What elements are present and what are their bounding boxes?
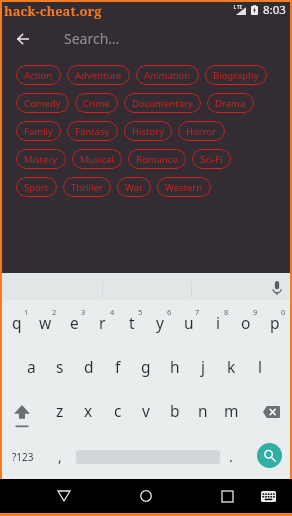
staticText: Thriller xyxy=(71,181,103,194)
button[interactable]: f xyxy=(103,345,132,388)
button[interactable]: Family xyxy=(16,121,61,141)
button[interactable]: c xyxy=(103,389,132,432)
button[interactable]: Recent apps xyxy=(207,479,247,513)
staticText: Horror xyxy=(186,125,217,138)
button[interactable]: Sci-Fi xyxy=(192,149,231,169)
button[interactable]: q xyxy=(2,301,31,344)
button[interactable]: v xyxy=(131,389,160,432)
button[interactable]: Crime xyxy=(75,93,118,113)
button[interactable]: y xyxy=(145,301,174,344)
button[interactable]: x xyxy=(74,389,103,432)
button[interactable]: Sport xyxy=(16,177,57,197)
staticText: z xyxy=(56,400,64,421)
staticText: f xyxy=(115,356,121,377)
staticText: u xyxy=(184,312,194,333)
staticText: 0 xyxy=(281,307,286,317)
staticText: War xyxy=(125,181,143,194)
button[interactable] xyxy=(76,435,220,478)
button[interactable]: Romance xyxy=(128,149,186,169)
staticText: h xyxy=(170,356,180,377)
staticText: j xyxy=(201,356,205,377)
button[interactable]: k xyxy=(217,345,246,388)
button[interactable]: Search xyxy=(251,437,287,473)
button[interactable]: p xyxy=(260,301,289,344)
button[interactable]: Fantasy xyxy=(67,121,118,141)
staticText: Drama xyxy=(215,97,246,110)
staticText: v xyxy=(142,400,150,421)
button[interactable]: i xyxy=(203,301,232,344)
staticText: b xyxy=(170,400,180,421)
staticText: n xyxy=(198,400,208,421)
button[interactable]: Back xyxy=(44,479,84,513)
staticText: Fantasy xyxy=(75,125,110,138)
staticText: 4 xyxy=(110,307,115,317)
staticText: Crime xyxy=(83,97,110,110)
staticText: History xyxy=(132,125,164,138)
button[interactable]: m xyxy=(217,389,246,432)
button[interactable]: Switch keyboard xyxy=(248,479,288,513)
button[interactable]: . xyxy=(217,435,245,478)
button[interactable]: a xyxy=(17,345,46,388)
staticText: Romance xyxy=(136,153,178,166)
button[interactable]: z xyxy=(45,389,74,432)
button[interactable]: Mistery xyxy=(16,149,66,169)
button[interactable]: Voice input xyxy=(261,275,292,301)
staticText: m xyxy=(224,400,239,421)
staticText: Adventure xyxy=(75,69,122,82)
staticText: o xyxy=(241,312,251,333)
button[interactable]: e xyxy=(60,301,89,344)
button[interactable]: t xyxy=(117,301,146,344)
button[interactable]: n xyxy=(188,389,217,432)
button[interactable]: Drama xyxy=(207,93,254,113)
button[interactable]: r xyxy=(88,301,117,344)
staticText: 1 xyxy=(24,307,29,317)
button[interactable]: Thriller xyxy=(63,177,111,197)
staticText: w xyxy=(39,312,52,333)
button[interactable]: g xyxy=(131,345,160,388)
staticText: l xyxy=(258,356,262,377)
staticText: x xyxy=(84,400,93,421)
button[interactable]: Home xyxy=(126,479,166,513)
staticText: i xyxy=(216,312,220,333)
button[interactable]: Action xyxy=(16,65,61,85)
button[interactable]: s xyxy=(45,345,74,388)
button[interactable]: Back xyxy=(4,20,41,58)
button[interactable]: Horror xyxy=(178,121,225,141)
button[interactable]: l xyxy=(245,345,274,388)
staticText: ?123 xyxy=(12,450,34,464)
staticText: Animation xyxy=(144,69,191,82)
button[interactable]: Documentary xyxy=(124,93,201,113)
button[interactable]: Adventure xyxy=(67,65,130,85)
button[interactable]: Western xyxy=(157,177,211,197)
staticText: a xyxy=(27,356,36,377)
staticText: Documentary xyxy=(132,97,193,110)
button[interactable]: War xyxy=(117,177,151,197)
button[interactable]: b xyxy=(160,389,189,432)
button[interactable]: ?123 xyxy=(3,435,43,478)
staticText: s xyxy=(56,356,64,377)
button[interactable]: u xyxy=(174,301,203,344)
staticText: 6 xyxy=(167,307,172,317)
button[interactable]: d xyxy=(74,345,103,388)
staticText: . xyxy=(229,447,233,466)
button[interactable]: Musical xyxy=(72,149,122,169)
button[interactable]: , xyxy=(46,435,74,478)
button[interactable]: Shift xyxy=(2,394,42,437)
staticText: 2 xyxy=(52,307,57,317)
button[interactable]: h xyxy=(160,345,189,388)
button[interactable]: Comedy xyxy=(16,93,69,113)
button[interactable]: Backspace xyxy=(251,390,291,433)
button[interactable]: History xyxy=(124,121,172,141)
button[interactable]: Animation xyxy=(136,65,199,85)
staticText: hack-cheat.org xyxy=(4,2,102,20)
staticText: r xyxy=(99,312,106,333)
staticText: y xyxy=(156,312,164,333)
button[interactable]: j xyxy=(188,345,217,388)
button[interactable]: o xyxy=(231,301,260,344)
staticText: Sport xyxy=(24,181,49,194)
staticText: 8:03 xyxy=(263,2,286,18)
staticText: c xyxy=(114,400,122,421)
button[interactable]: w xyxy=(31,301,60,344)
staticText: q xyxy=(12,312,22,333)
button[interactable]: Biography xyxy=(205,65,267,85)
